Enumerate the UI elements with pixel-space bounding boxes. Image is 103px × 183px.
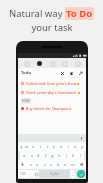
staticText: q <box>20 144 23 149</box>
staticText: k <box>72 153 75 158</box>
staticText: t <box>47 144 49 149</box>
staticText: p <box>81 144 84 149</box>
button[interactable]: Tab 3 <box>48 59 57 68</box>
button[interactable]: v <box>48 160 55 169</box>
staticText: s <box>31 153 33 158</box>
staticText: a <box>23 153 26 158</box>
button[interactable]: Tab 4 <box>60 59 69 68</box>
button[interactable]: Buy tickets for Champions trophy <box>18 104 86 113</box>
button[interactable]: f <box>42 151 49 160</box>
staticText: Buy tickets for Champions trophy <box>26 106 83 111</box>
staticText: SOON <box>22 99 30 103</box>
staticText: ?123 <box>20 172 26 176</box>
button[interactable]: SOON <box>21 98 31 104</box>
staticText: f <box>45 153 47 158</box>
staticText: o <box>74 144 77 149</box>
button[interactable]: d <box>35 151 42 160</box>
staticText: h <box>58 153 61 158</box>
button[interactable]: Close <box>58 69 67 78</box>
staticText: To Do <box>66 7 93 20</box>
staticText: : <box>33 99 34 103</box>
staticText: d <box>37 153 40 158</box>
staticText: w <box>25 144 29 149</box>
staticText: i <box>68 144 70 149</box>
staticText: , <box>30 172 31 177</box>
button[interactable]: Emoji <box>33 170 39 178</box>
button[interactable]: w <box>24 142 30 151</box>
staticText: Todo <box>21 70 32 76</box>
button[interactable]: i <box>65 142 72 151</box>
button[interactable]: m <box>69 160 76 169</box>
button[interactable]: g <box>49 151 56 160</box>
staticText: Collect milk from john's shop <box>26 81 76 86</box>
button[interactable]: Shift <box>18 160 27 169</box>
button[interactable]: Backspace <box>76 160 86 169</box>
button[interactable]: Tab 5 <box>73 59 82 68</box>
button[interactable]: b <box>55 160 62 169</box>
button[interactable]: Space <box>39 170 70 178</box>
button[interactable]: Finish yesterday's homework <box>18 88 86 97</box>
button[interactable]: x <box>34 160 41 169</box>
staticText: English <box>50 172 59 176</box>
staticText: z <box>30 162 32 167</box>
button[interactable]: Voice input <box>79 136 84 141</box>
staticText: e <box>32 144 35 149</box>
button[interactable]: . <box>70 170 75 178</box>
button[interactable]: z <box>27 160 34 169</box>
button[interactable]: p <box>79 142 86 151</box>
staticText: x <box>36 162 39 167</box>
button[interactable]: u <box>58 142 65 151</box>
staticText: Finish yesterday's homework <box>26 90 77 95</box>
button[interactable]: h <box>56 151 63 160</box>
staticText: y <box>53 144 56 149</box>
staticText: . <box>72 172 73 177</box>
button[interactable]: Delete <box>67 69 76 78</box>
staticText: l <box>80 153 82 158</box>
button[interactable]: j <box>63 151 70 160</box>
staticText: r <box>40 144 42 149</box>
staticText: your task <box>31 21 73 34</box>
button[interactable]: a <box>20 151 28 160</box>
staticText: c <box>44 162 46 167</box>
button[interactable]: n <box>62 160 69 169</box>
staticText: u <box>60 144 63 149</box>
staticText: j <box>66 153 68 158</box>
staticText: b <box>57 162 60 167</box>
button[interactable]: ?123 <box>18 170 28 178</box>
button[interactable]: r <box>37 142 44 151</box>
button[interactable]: e <box>30 142 37 151</box>
button[interactable]: Tab 2 <box>35 59 44 68</box>
button[interactable]: k <box>70 151 77 160</box>
button[interactable]: y <box>51 142 58 151</box>
button[interactable]: s <box>28 151 35 160</box>
button[interactable]: q <box>18 142 24 151</box>
button[interactable]: o <box>72 142 79 151</box>
staticText: g <box>51 153 54 158</box>
button[interactable]: Tab 1 <box>22 59 31 68</box>
staticText: m <box>71 162 75 167</box>
staticText: v <box>50 162 53 167</box>
button[interactable]: Collect milk from john's shop <box>18 79 86 88</box>
button[interactable]: Enter <box>77 170 85 178</box>
button[interactable]: l <box>77 151 84 160</box>
button[interactable]: t <box>44 142 51 151</box>
button[interactable]: Expand <box>76 69 85 78</box>
staticText: Natural way <box>9 7 65 20</box>
button[interactable]: , <box>28 170 33 178</box>
staticText: n <box>64 162 67 167</box>
button[interactable]: c <box>41 160 48 169</box>
